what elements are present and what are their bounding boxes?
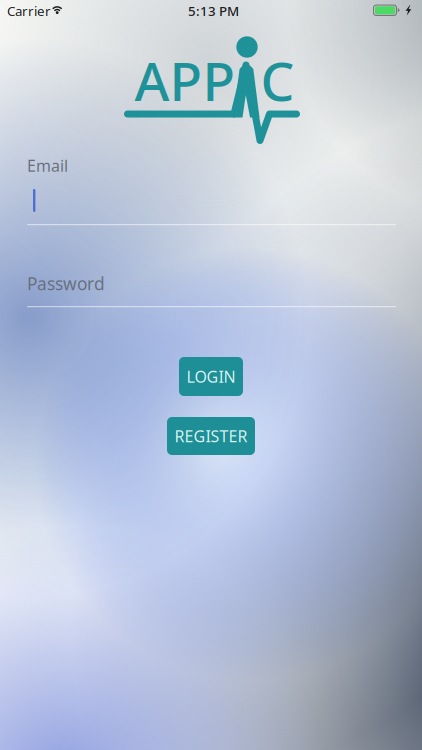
button[interactable]: REGISTER	[167, 417, 255, 455]
staticText: REGISTER	[174, 425, 247, 447]
staticText: C	[260, 45, 294, 116]
staticText: Carrier	[7, 2, 51, 20]
staticText: LOGIN	[186, 366, 235, 387]
staticText: Email	[27, 155, 68, 176]
staticText: APP	[134, 45, 235, 116]
staticText: Password	[27, 272, 105, 295]
staticText: 5:13 PM	[188, 2, 239, 20]
button[interactable]: LOGIN	[179, 357, 243, 396]
